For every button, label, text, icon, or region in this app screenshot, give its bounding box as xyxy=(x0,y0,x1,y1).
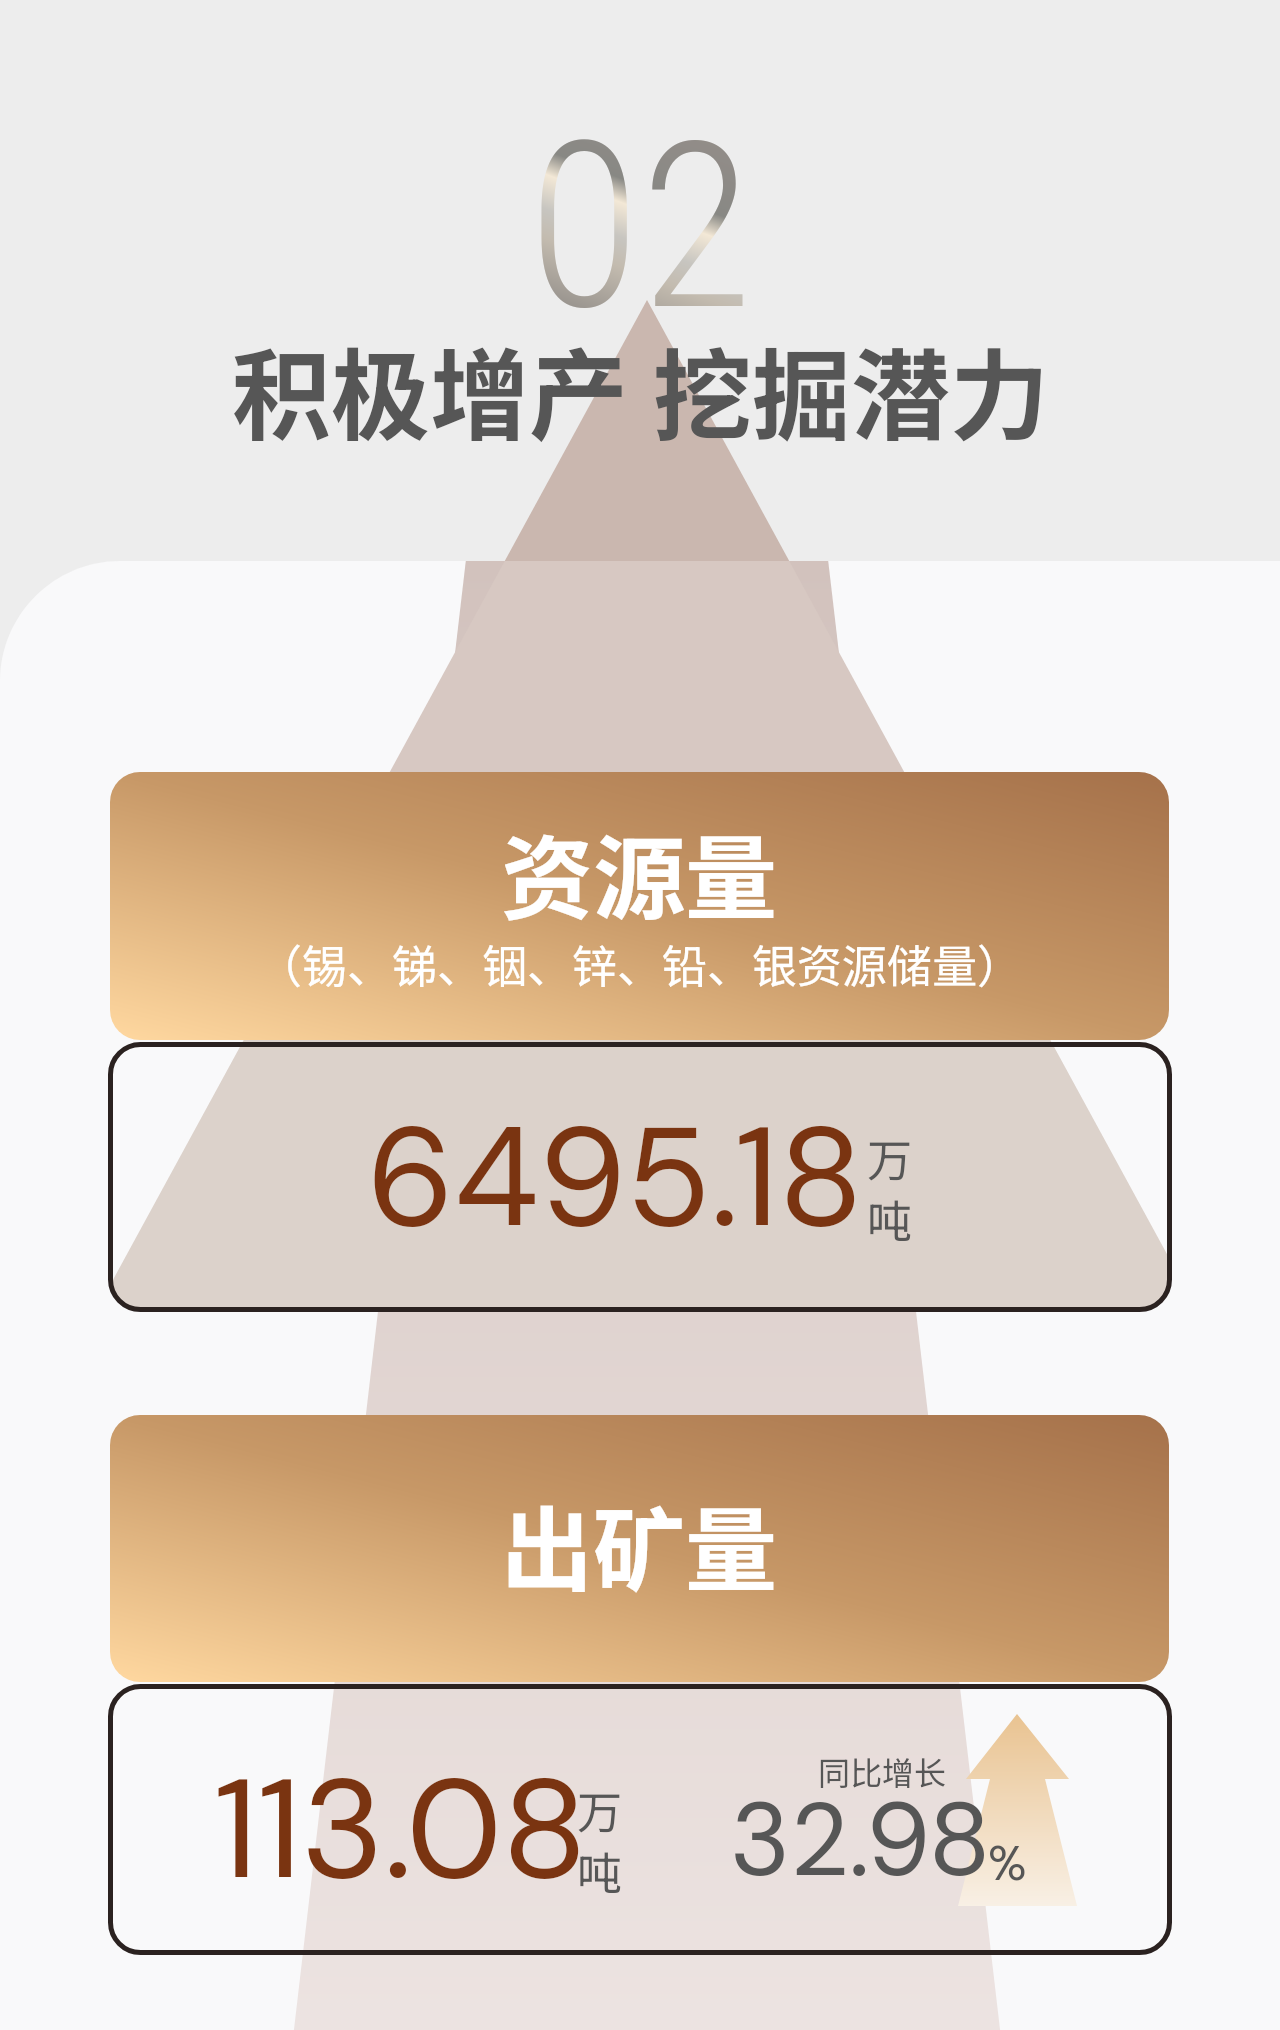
button[interactable]: 资源量 6495.18 万吨 xyxy=(108,1042,1172,1312)
staticText: 万 xyxy=(867,1125,913,1190)
staticText: 02 xyxy=(528,92,753,363)
staticText: （锡、锑、铟、锌、铅、银资源储量） xyxy=(257,931,1023,996)
staticText: 积极增产 挖掘潜力 xyxy=(232,317,1049,460)
button[interactable]: 出矿量 113.08 万吨 同比增长 32.98% xyxy=(108,1684,1172,1955)
staticText: 6495.18 xyxy=(367,1087,863,1268)
other: Growth up arrow xyxy=(0,0,1280,2030)
staticText: 出矿量 xyxy=(501,1477,778,1610)
staticText: 32.98 xyxy=(730,1774,991,1907)
button[interactable]: 出矿量 xyxy=(110,1415,1169,1682)
button[interactable]: 资源量 xyxy=(110,772,1169,1040)
staticText: 同比增长 xyxy=(818,1748,947,1794)
staticText: 吨 xyxy=(577,1838,623,1903)
staticText: % xyxy=(988,1831,1027,1895)
staticText: 吨 xyxy=(867,1186,913,1251)
staticText: 资源量 xyxy=(501,805,778,938)
staticText: 113.08 xyxy=(214,1738,588,1920)
staticText: 万 xyxy=(577,1777,623,1842)
